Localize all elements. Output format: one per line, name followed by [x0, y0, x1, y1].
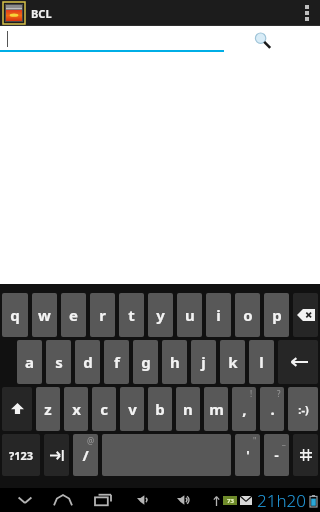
button[interactable]: g — [133, 340, 158, 384]
button[interactable]: Search — [250, 28, 276, 54]
button[interactable]: z — [36, 387, 60, 431]
button[interactable]: _ — [264, 434, 289, 476]
staticText: . — [270, 399, 275, 419]
staticText: m — [209, 399, 224, 419]
button[interactable]: Enter — [278, 340, 318, 384]
staticText: :-) — [298, 402, 309, 417]
staticText: j — [201, 352, 206, 372]
button[interactable]: p — [264, 293, 289, 337]
button[interactable]: ?123 — [2, 434, 40, 476]
button[interactable]: m — [204, 387, 228, 431]
staticText: @ — [87, 435, 95, 446]
staticText: " — [253, 435, 257, 446]
staticText: p — [272, 305, 282, 325]
staticText: l — [259, 352, 264, 372]
button[interactable]: r — [90, 293, 115, 337]
staticText: b — [155, 399, 165, 419]
staticText: t — [128, 305, 135, 325]
button[interactable]: k — [220, 340, 245, 384]
staticText: ! — [250, 388, 253, 399]
button[interactable] — [0, 26, 224, 56]
staticText: s — [55, 352, 63, 372]
staticText: g — [141, 352, 151, 372]
button[interactable]: Home — [50, 488, 76, 512]
staticText: _ — [282, 435, 286, 446]
staticText: - — [274, 446, 279, 464]
staticText: d — [83, 352, 93, 372]
button[interactable]: c — [92, 387, 116, 431]
button[interactable]: f — [104, 340, 129, 384]
button[interactable]: u — [177, 293, 202, 337]
staticText: n — [183, 399, 193, 419]
staticText: a — [25, 352, 34, 372]
button[interactable]: Volume down — [132, 488, 158, 512]
button[interactable]: q — [2, 293, 28, 337]
button[interactable]: a — [17, 340, 42, 384]
button[interactable]: i — [206, 293, 231, 337]
staticText: / — [82, 445, 89, 465]
staticText: c — [100, 399, 108, 419]
staticText: 21h20 — [257, 489, 306, 512]
staticText: e — [69, 305, 78, 325]
button[interactable]: d — [75, 340, 100, 384]
button[interactable]: Hide keyboard — [12, 488, 38, 512]
staticText: h — [170, 352, 180, 372]
staticText: q — [10, 305, 20, 325]
staticText: o — [243, 305, 253, 325]
button[interactable]: Delete — [293, 293, 318, 337]
button[interactable]: w — [32, 293, 57, 337]
staticText: x — [72, 399, 81, 419]
staticText: i — [216, 305, 221, 325]
staticText: ?123 — [9, 448, 34, 463]
staticText: 73 — [227, 497, 234, 505]
button[interactable]: v — [120, 387, 144, 431]
staticText: ? — [277, 388, 281, 399]
button[interactable]: Shift — [2, 387, 32, 431]
button[interactable]: t — [119, 293, 144, 337]
button[interactable]: y — [148, 293, 173, 337]
button[interactable]: Recent apps — [90, 488, 116, 512]
staticText: u — [185, 305, 195, 325]
staticText: k — [228, 352, 238, 372]
button[interactable]: " — [235, 434, 260, 476]
button[interactable]: o — [235, 293, 260, 337]
button[interactable]: ! — [232, 387, 256, 431]
button[interactable]: x — [64, 387, 88, 431]
button[interactable]: Keyboard settings — [293, 434, 318, 476]
staticText: v — [128, 399, 137, 419]
staticText: r — [99, 305, 106, 325]
staticText: z — [44, 399, 52, 419]
staticText: , — [242, 399, 247, 419]
staticText: BCL — [31, 6, 52, 21]
button[interactable]: @ — [73, 434, 98, 476]
button[interactable]: b — [148, 387, 172, 431]
button[interactable]: More options — [298, 0, 316, 26]
staticText: f — [114, 352, 120, 372]
button[interactable]: s — [46, 340, 71, 384]
button[interactable]: j — [191, 340, 216, 384]
button[interactable]: ? — [260, 387, 284, 431]
staticText: ' — [246, 446, 250, 464]
button[interactable]: Tab — [44, 434, 69, 476]
button[interactable]: :-) — [288, 387, 318, 431]
button[interactable]: n — [176, 387, 200, 431]
button[interactable]: App icon — [3, 2, 25, 24]
button[interactable]: Volume up — [172, 488, 198, 512]
button[interactable]: h — [162, 340, 187, 384]
staticText: y — [156, 305, 165, 325]
button[interactable]: e — [61, 293, 86, 337]
button[interactable]: l — [249, 340, 274, 384]
staticText: w — [38, 305, 51, 325]
